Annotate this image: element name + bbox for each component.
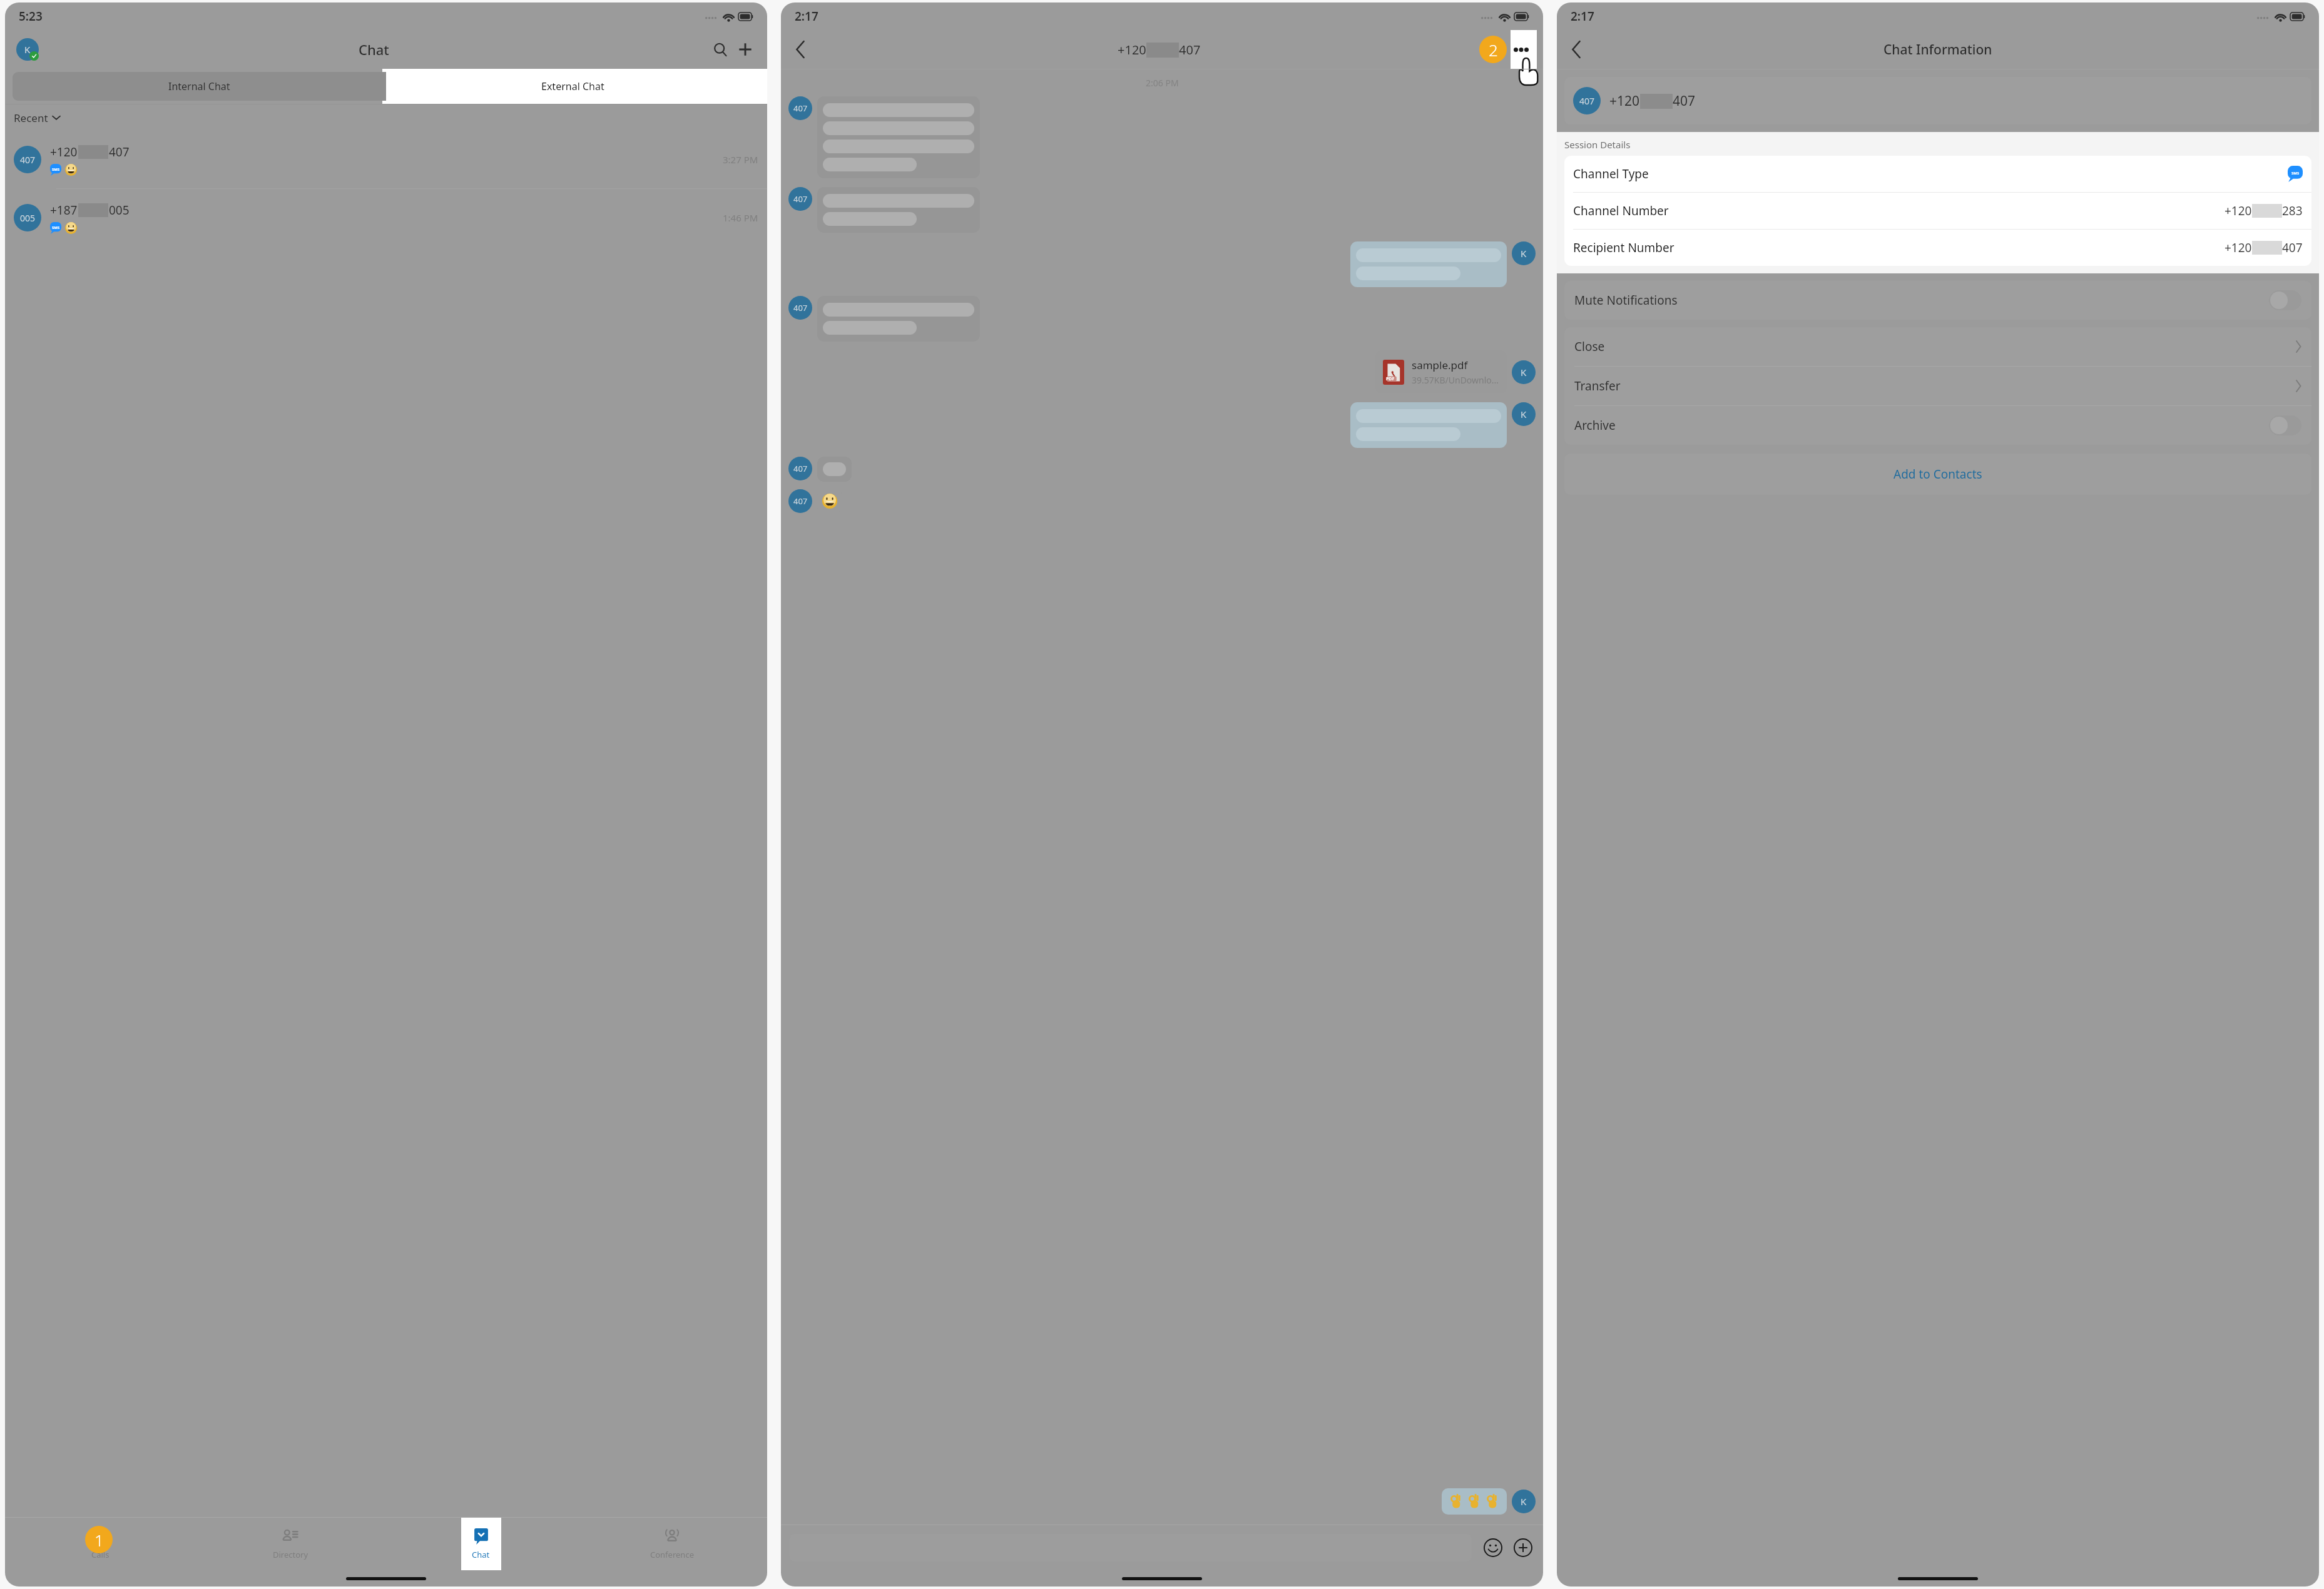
button[interactable]: Recipient Number	[1564, 230, 2311, 266]
staticText: 407	[1179, 41, 1201, 58]
button[interactable]: Recent	[14, 104, 758, 131]
button[interactable]: PDF	[1375, 350, 1507, 393]
staticText: Close	[1574, 338, 1605, 355]
staticText: 407	[109, 144, 130, 160]
staticText: +120	[2225, 240, 2252, 256]
button[interactable]: 407	[1564, 77, 2311, 124]
staticText: +120	[1609, 92, 1640, 110]
staticText: Internal Chat	[168, 79, 230, 93]
button[interactable]: 407	[14, 131, 758, 188]
staticText: SMS	[52, 225, 60, 230]
staticText: 1:46 PM	[723, 211, 758, 224]
staticText: 5:23	[19, 8, 43, 24]
staticText: 2:17	[1571, 8, 1594, 24]
staticText: Directory	[273, 1549, 308, 1560]
staticText: 407	[1579, 95, 1595, 107]
staticText: 407	[793, 302, 808, 313]
staticText: K	[24, 43, 31, 56]
staticText: +120	[1118, 41, 1146, 58]
staticText: Transfer	[1574, 378, 1621, 394]
staticText: 407	[793, 463, 808, 474]
staticText: 005	[109, 202, 130, 218]
button[interactable]: Directory	[195, 1518, 385, 1570]
staticText: K	[1521, 366, 1527, 378]
button[interactable]: Chat	[472, 1518, 490, 1570]
button[interactable]: Internal Chat	[13, 72, 386, 101]
button[interactable]	[817, 296, 980, 342]
staticText: 005	[20, 212, 36, 224]
button[interactable]: Back	[1566, 39, 1587, 60]
staticText: Archive	[1574, 417, 1616, 434]
button[interactable]: Back	[790, 39, 811, 60]
button[interactable]: Conference	[576, 1518, 767, 1570]
staticText: PDF	[1386, 376, 1395, 382]
staticText: 407	[793, 193, 808, 205]
staticText: Add to Contacts	[1893, 466, 1982, 482]
button[interactable]	[817, 490, 842, 512]
staticText: 3:27 PM	[723, 153, 758, 166]
staticText: K	[1521, 247, 1527, 260]
button[interactable]: 005	[14, 189, 758, 246]
staticText: +187	[50, 202, 78, 218]
staticText: 39.57KB/UnDownlo...	[1412, 374, 1499, 386]
staticText: +120	[50, 144, 78, 160]
button[interactable]: Mute Notifications	[1564, 281, 2311, 320]
button[interactable]	[1442, 1488, 1507, 1515]
staticText: Calls	[91, 1549, 110, 1560]
staticText: Channel Number	[1573, 203, 1669, 219]
button[interactable]: Search	[710, 39, 731, 60]
staticText: K	[1521, 1495, 1527, 1508]
staticText: Channel Type	[1573, 166, 1649, 182]
staticText: External Chat	[541, 79, 604, 93]
button[interactable]: Close	[1564, 327, 2311, 366]
staticText: 2	[1489, 39, 1498, 61]
staticText: K	[1521, 408, 1527, 420]
button[interactable]: Channel Number	[1564, 193, 2311, 229]
button[interactable]	[817, 96, 980, 178]
staticText: 407	[1673, 92, 1696, 110]
button[interactable]	[817, 187, 980, 233]
button[interactable]: External Chat	[386, 72, 760, 101]
button[interactable]: Channel Type	[1564, 156, 2311, 192]
button[interactable]: More options	[1508, 36, 1534, 63]
staticText: 407	[2282, 240, 2303, 256]
staticText: 2:06 PM	[1146, 77, 1179, 89]
button[interactable]: Attach	[1512, 1536, 1534, 1559]
staticText: Recent	[14, 111, 48, 125]
button[interactable]: Emoji	[1482, 1536, 1504, 1559]
button[interactable]	[1350, 402, 1507, 448]
staticText: sample.pdf	[1412, 358, 1468, 372]
staticText: Chat	[472, 1549, 490, 1560]
button[interactable]	[817, 457, 852, 482]
staticText: Session Details	[1564, 138, 1631, 151]
button[interactable]: Add to Contacts	[1564, 454, 2311, 495]
staticText: 2:17	[795, 8, 818, 24]
staticText: 283	[2282, 203, 2303, 219]
staticText: 407	[793, 103, 808, 114]
staticText: SMS	[2291, 171, 2300, 176]
button[interactable]	[1350, 241, 1507, 287]
staticText: 407	[20, 154, 36, 166]
staticText: +120	[2225, 203, 2252, 219]
button[interactable]: Archive	[1564, 406, 2311, 445]
staticText: Mute Notifications	[1574, 292, 1678, 308]
button[interactable]: Transfer	[1564, 367, 2311, 405]
button[interactable]: Profile	[16, 38, 39, 61]
staticText: Chat	[359, 40, 389, 59]
staticText: SMS	[52, 167, 60, 172]
staticText: Recipient Number	[1573, 240, 1674, 256]
staticText: 407	[793, 495, 808, 507]
staticText: 1	[94, 1529, 104, 1551]
staticText: Chat Information	[1883, 41, 1992, 59]
staticText: Conference	[650, 1549, 694, 1560]
button[interactable]: Calls	[5, 1518, 195, 1570]
button[interactable]: New chat	[735, 39, 756, 60]
